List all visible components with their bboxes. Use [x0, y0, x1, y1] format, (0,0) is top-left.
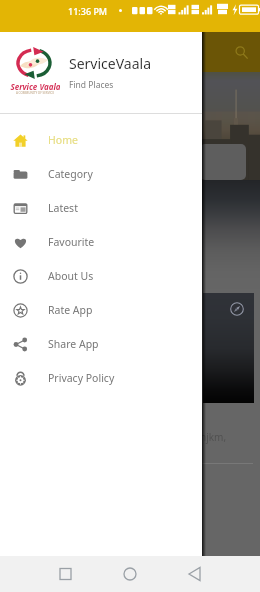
staticText: Favourite [48, 235, 95, 249]
button[interactable]: Privacy Policy [0, 361, 202, 395]
staticText: Latest [48, 201, 78, 215]
staticText: Share App [48, 337, 99, 351]
button[interactable]: Share App [0, 327, 202, 361]
staticText: A COMMUNITY OF SERVICE [10, 91, 60, 95]
button[interactable]: About Us [0, 259, 202, 293]
staticText: Category [48, 167, 93, 181]
button[interactable]: Favourite [0, 225, 202, 259]
staticText: Rate App [48, 303, 93, 317]
staticText: Home [48, 133, 78, 147]
button[interactable]: Search [230, 41, 252, 63]
button[interactable]: Latest [0, 191, 202, 225]
staticText: Privacy Policy [48, 371, 115, 385]
staticText: 11:36 PM [68, 5, 108, 17]
button[interactable]: Home [0, 123, 202, 157]
staticText: About Us [48, 269, 94, 283]
staticText: Service Vaala [10, 81, 60, 92]
staticText: Find Places [69, 79, 114, 91]
staticText: ServiceVaala [69, 54, 151, 73]
button[interactable]: Category [0, 157, 202, 191]
button[interactable]: Navigate [230, 302, 244, 316]
button[interactable]: Rate App [0, 293, 202, 327]
staticText: njkm, [200, 430, 227, 444]
